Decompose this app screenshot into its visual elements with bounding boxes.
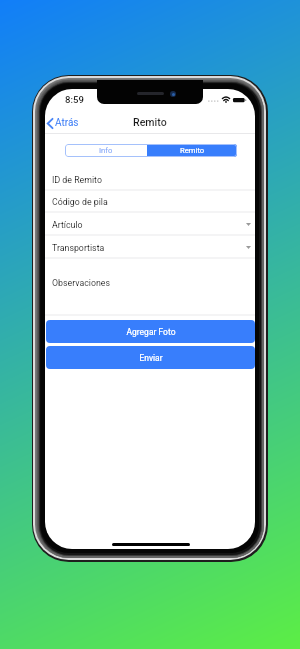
staticText: Artículo [52, 220, 83, 230]
button[interactable]: Info [65, 144, 147, 157]
staticText: Código de pila [52, 197, 108, 207]
button[interactable]: Observaciones [45, 258, 255, 316]
staticText: 8:59 [65, 94, 84, 105]
staticText: Agregar Foto [126, 327, 176, 337]
button[interactable]: Transportista [45, 236, 255, 259]
staticText: Remito [133, 116, 167, 128]
button[interactable]: Enviar [46, 346, 255, 369]
staticText: Enviar [139, 353, 163, 363]
button[interactable]: Remito [147, 144, 237, 157]
button[interactable]: Artículo [45, 213, 255, 236]
staticText: Observaciones [52, 278, 111, 288]
button[interactable]: Agregar Foto [46, 320, 255, 343]
staticText: Remito [180, 146, 205, 155]
staticText: Transportista [52, 243, 105, 253]
staticText: Atrás [55, 117, 79, 129]
staticText: Info [99, 146, 113, 155]
button[interactable]: ID de Remito [45, 168, 255, 191]
staticText: ID de Remito [52, 175, 102, 185]
button[interactable]: Código de pila [45, 190, 255, 213]
button[interactable]: Atrás [46, 115, 84, 131]
